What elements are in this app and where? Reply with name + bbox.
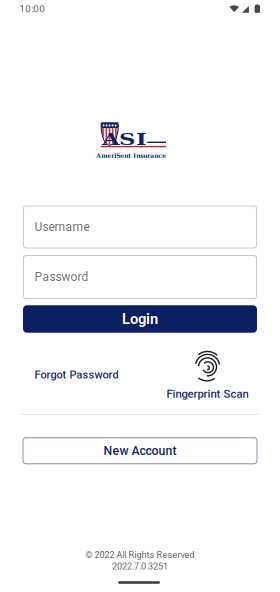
button[interactable]: Fingerprint Scan — [166, 349, 248, 401]
button[interactable]: Username — [23, 205, 257, 248]
button[interactable]: New Account — [23, 438, 257, 464]
staticText: Login — [122, 310, 158, 328]
staticText: © 2022 All Rights Reserved — [85, 550, 194, 560]
staticText: 2022.7.0.3251 — [112, 561, 168, 572]
button[interactable]: Forgot Password — [34, 368, 118, 381]
staticText: Username — [34, 220, 89, 234]
staticText: New Account — [103, 444, 176, 458]
staticText: AmeriSent Insurance — [96, 152, 166, 159]
button[interactable]: Login — [23, 305, 257, 333]
button[interactable]: Password — [23, 255, 257, 299]
staticText: Password — [34, 270, 88, 284]
staticText: Forgot Password — [34, 368, 118, 381]
staticText: Fingerprint Scan — [166, 387, 248, 401]
staticText: 10:00 — [19, 3, 45, 15]
staticText: ASI — [108, 130, 139, 149]
